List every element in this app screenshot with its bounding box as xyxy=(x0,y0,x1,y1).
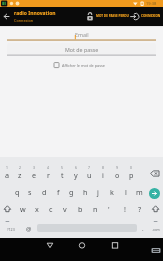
button[interactable]: o xyxy=(110,167,124,183)
staticText: Mot de passe xyxy=(65,46,99,53)
staticText: 9 xyxy=(116,165,118,170)
staticText: n xyxy=(93,204,98,214)
button[interactable]: @ xyxy=(22,221,36,237)
staticText: 6 xyxy=(75,165,77,170)
staticText: w xyxy=(20,204,26,214)
staticText: Email xyxy=(75,31,89,38)
staticText: 8 xyxy=(102,165,104,170)
button[interactable]: z xyxy=(13,167,27,183)
button[interactable]: v xyxy=(58,201,72,217)
staticText: 2 xyxy=(19,165,21,170)
button[interactable]: g xyxy=(64,184,78,200)
button[interactable]: q xyxy=(10,184,24,200)
button[interactable] xyxy=(44,239,56,252)
staticText: @ xyxy=(26,225,32,233)
button[interactable]: j xyxy=(91,184,105,200)
staticText: 7 xyxy=(88,165,90,170)
button[interactable]: s xyxy=(23,184,37,200)
staticText: s xyxy=(28,187,32,197)
button[interactable]: h xyxy=(78,184,92,200)
button[interactable]: e xyxy=(27,167,41,183)
staticText: q xyxy=(15,187,20,197)
button[interactable]: ' xyxy=(102,201,116,217)
staticText: l xyxy=(125,187,127,197)
staticText: a xyxy=(5,170,10,180)
staticText: i xyxy=(102,170,104,180)
button[interactable]: n xyxy=(88,201,102,217)
staticText: .com xyxy=(152,227,160,232)
button[interactable]: l xyxy=(119,184,133,200)
button[interactable] xyxy=(109,239,121,252)
button[interactable]: t xyxy=(55,167,69,183)
button[interactable]: m xyxy=(132,184,146,200)
staticText: j xyxy=(97,187,99,197)
button[interactable]: w xyxy=(16,201,30,217)
staticText: radio Innovation xyxy=(14,10,56,17)
staticText: u xyxy=(87,170,92,180)
button[interactable] xyxy=(76,239,88,252)
staticText: ! xyxy=(124,204,126,214)
button[interactable]: i xyxy=(96,167,110,183)
staticText: x xyxy=(35,204,39,214)
staticText: 5 xyxy=(61,165,63,170)
staticText: MOT DE PASSE PERDU xyxy=(96,14,129,18)
staticText: f xyxy=(57,187,60,197)
staticText: d xyxy=(42,187,47,197)
staticText: v xyxy=(63,204,67,214)
staticText: m xyxy=(136,187,143,197)
staticText: . xyxy=(142,225,144,233)
staticText: 4 xyxy=(47,165,49,170)
button[interactable]: a xyxy=(0,167,14,183)
button[interactable] xyxy=(7,43,156,56)
button[interactable] xyxy=(7,28,156,41)
staticText: Connexion xyxy=(14,18,34,23)
button[interactable]: MOT DE PASSE PERDU xyxy=(85,10,128,23)
button[interactable]: d xyxy=(37,184,51,200)
staticText: 0 xyxy=(130,165,132,170)
button[interactable]: c xyxy=(44,201,58,217)
button[interactable]: k xyxy=(105,184,119,200)
staticText: z xyxy=(18,170,22,180)
button[interactable] xyxy=(149,188,160,199)
staticText: t xyxy=(61,170,64,180)
staticText: 19:38 xyxy=(146,1,157,6)
staticText: Afficher le mot de passe xyxy=(62,63,105,68)
button[interactable]: ? xyxy=(133,201,147,217)
staticText: g xyxy=(69,187,74,197)
button[interactable]: Afficher le mot de passe xyxy=(52,61,112,70)
button[interactable]: b xyxy=(73,201,87,217)
staticText: CONNEXION xyxy=(141,14,161,18)
staticText: y xyxy=(74,170,78,180)
button[interactable]: r xyxy=(41,167,55,183)
button[interactable]: . xyxy=(136,221,150,237)
button[interactable]: y xyxy=(69,167,83,183)
button[interactable]: ! xyxy=(118,201,132,217)
staticText: o xyxy=(115,170,120,180)
staticText: h xyxy=(83,187,88,197)
staticText: p xyxy=(129,170,134,180)
button[interactable]: x xyxy=(30,201,44,217)
button[interactable]: u xyxy=(82,167,96,183)
staticText: ?123 xyxy=(7,227,15,232)
button[interactable]: p xyxy=(124,167,138,183)
staticText: c xyxy=(49,204,53,214)
staticText: r xyxy=(47,170,50,180)
button[interactable]: f xyxy=(51,184,65,200)
button[interactable] xyxy=(0,7,13,26)
staticText: k xyxy=(110,187,114,197)
staticText: b xyxy=(78,204,83,214)
staticText: e xyxy=(32,170,37,180)
button[interactable]: CONNEXION xyxy=(129,10,163,23)
staticText: 1 xyxy=(6,165,8,170)
staticText: 3 xyxy=(33,165,35,170)
staticText: ? xyxy=(138,204,142,214)
staticText: ' xyxy=(108,204,110,214)
